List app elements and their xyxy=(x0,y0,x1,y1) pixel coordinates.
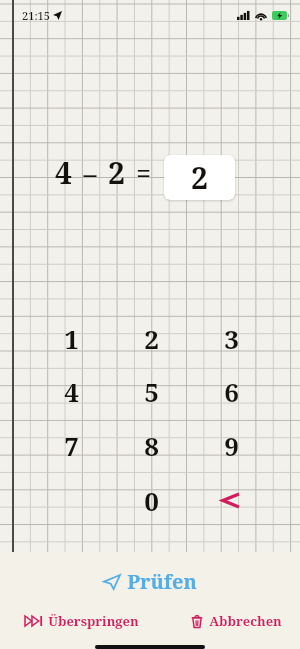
button[interactable]: 2 xyxy=(164,155,235,200)
staticText: 8 xyxy=(144,428,159,463)
staticText: 2 xyxy=(144,321,159,356)
staticText: 0 xyxy=(144,483,159,518)
staticText: 2 xyxy=(108,152,125,193)
staticText: 1 xyxy=(64,321,79,356)
button[interactable]: 0 xyxy=(118,476,184,524)
button[interactable]: 1 xyxy=(38,314,104,362)
button[interactable]: 2 xyxy=(118,314,184,362)
button[interactable]: 3 xyxy=(198,314,264,362)
staticText: Überspringen xyxy=(48,612,139,630)
button[interactable]: 5 xyxy=(118,367,184,415)
staticText: – xyxy=(83,155,97,190)
button[interactable]: 6 xyxy=(198,367,264,415)
staticText: = xyxy=(136,155,151,190)
staticText: 4 xyxy=(64,374,79,409)
staticText: 2 xyxy=(191,157,208,198)
button[interactable]: 4 xyxy=(38,367,104,415)
staticText: 9 xyxy=(224,428,239,463)
staticText: 6 xyxy=(224,374,239,409)
button[interactable]: 8 xyxy=(118,421,184,469)
staticText: Prüfen xyxy=(127,568,197,595)
button[interactable]: Überspringen xyxy=(20,609,144,633)
button[interactable]: Löschen xyxy=(198,476,264,524)
staticText: 21:15 xyxy=(22,8,50,23)
button[interactable]: 9 xyxy=(198,421,264,469)
staticText: 4 xyxy=(55,152,72,193)
button[interactable]: 7 xyxy=(38,421,104,469)
staticText: 7 xyxy=(64,428,79,463)
button[interactable]: Abbrechen xyxy=(186,609,287,633)
staticText: Abbrechen xyxy=(209,612,282,630)
staticText: 3 xyxy=(224,321,239,356)
staticText: 5 xyxy=(144,374,159,409)
button[interactable]: Prüfen xyxy=(94,564,207,599)
